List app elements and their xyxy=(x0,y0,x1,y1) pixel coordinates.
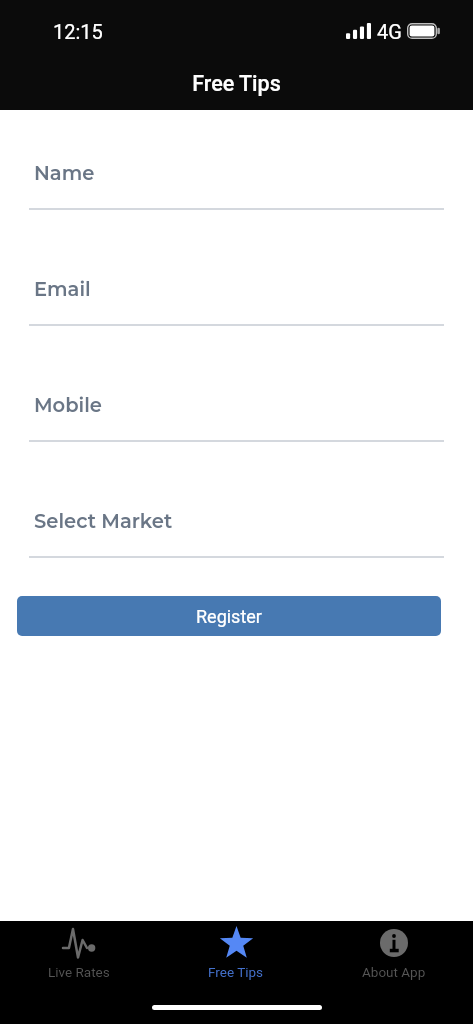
button[interactable]: About App xyxy=(315,921,473,980)
staticText: 12:15 xyxy=(53,20,103,43)
staticText: Email xyxy=(34,277,91,301)
button[interactable]: Email xyxy=(29,264,444,326)
staticText: Name xyxy=(34,161,95,185)
staticText: Free Tips xyxy=(0,71,473,96)
button[interactable]: Mobile xyxy=(29,380,444,442)
staticText: Register xyxy=(196,606,262,627)
staticText: Mobile xyxy=(34,393,102,417)
staticText: Select Market xyxy=(34,509,173,533)
staticText: Live Rates xyxy=(48,964,110,980)
button[interactable]: Select Market xyxy=(29,496,444,558)
button[interactable]: Free Tips xyxy=(157,921,315,980)
staticText: Free Tips xyxy=(208,964,264,980)
button[interactable]: Live Rates xyxy=(0,921,157,980)
button[interactable]: Name xyxy=(29,148,444,210)
button[interactable]: Register xyxy=(17,596,441,636)
staticText: 4G xyxy=(377,20,402,43)
staticText: About App xyxy=(362,964,426,980)
